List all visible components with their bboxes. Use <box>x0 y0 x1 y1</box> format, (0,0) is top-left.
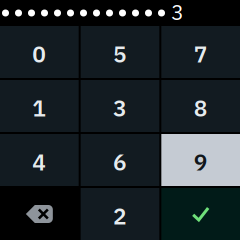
staticText: 2 <box>113 201 127 231</box>
staticText: 8 <box>194 93 208 123</box>
staticText: 4 <box>32 147 46 177</box>
staticText: 3 <box>171 0 184 26</box>
button[interactable]: 0 <box>0 26 79 78</box>
staticText: 5 <box>113 39 127 69</box>
button[interactable]: 9 <box>161 134 240 186</box>
button[interactable]: 7 <box>161 26 240 78</box>
staticText: 7 <box>194 39 208 69</box>
button[interactable]: Confirm <box>161 188 240 240</box>
button[interactable]: 2 <box>81 188 159 240</box>
button[interactable]: 4 <box>0 134 79 186</box>
staticText: 3 <box>113 93 127 123</box>
button[interactable]: 6 <box>81 134 159 186</box>
staticText: 9 <box>194 147 208 177</box>
staticText: 6 <box>113 147 127 177</box>
staticText: 0 <box>32 39 46 69</box>
button[interactable]: 1 <box>0 80 79 132</box>
button[interactable]: Delete <box>0 188 79 240</box>
button[interactable]: 3 <box>81 80 159 132</box>
button[interactable]: 8 <box>161 80 240 132</box>
button[interactable]: 5 <box>81 26 159 78</box>
staticText: 1 <box>32 93 46 123</box>
